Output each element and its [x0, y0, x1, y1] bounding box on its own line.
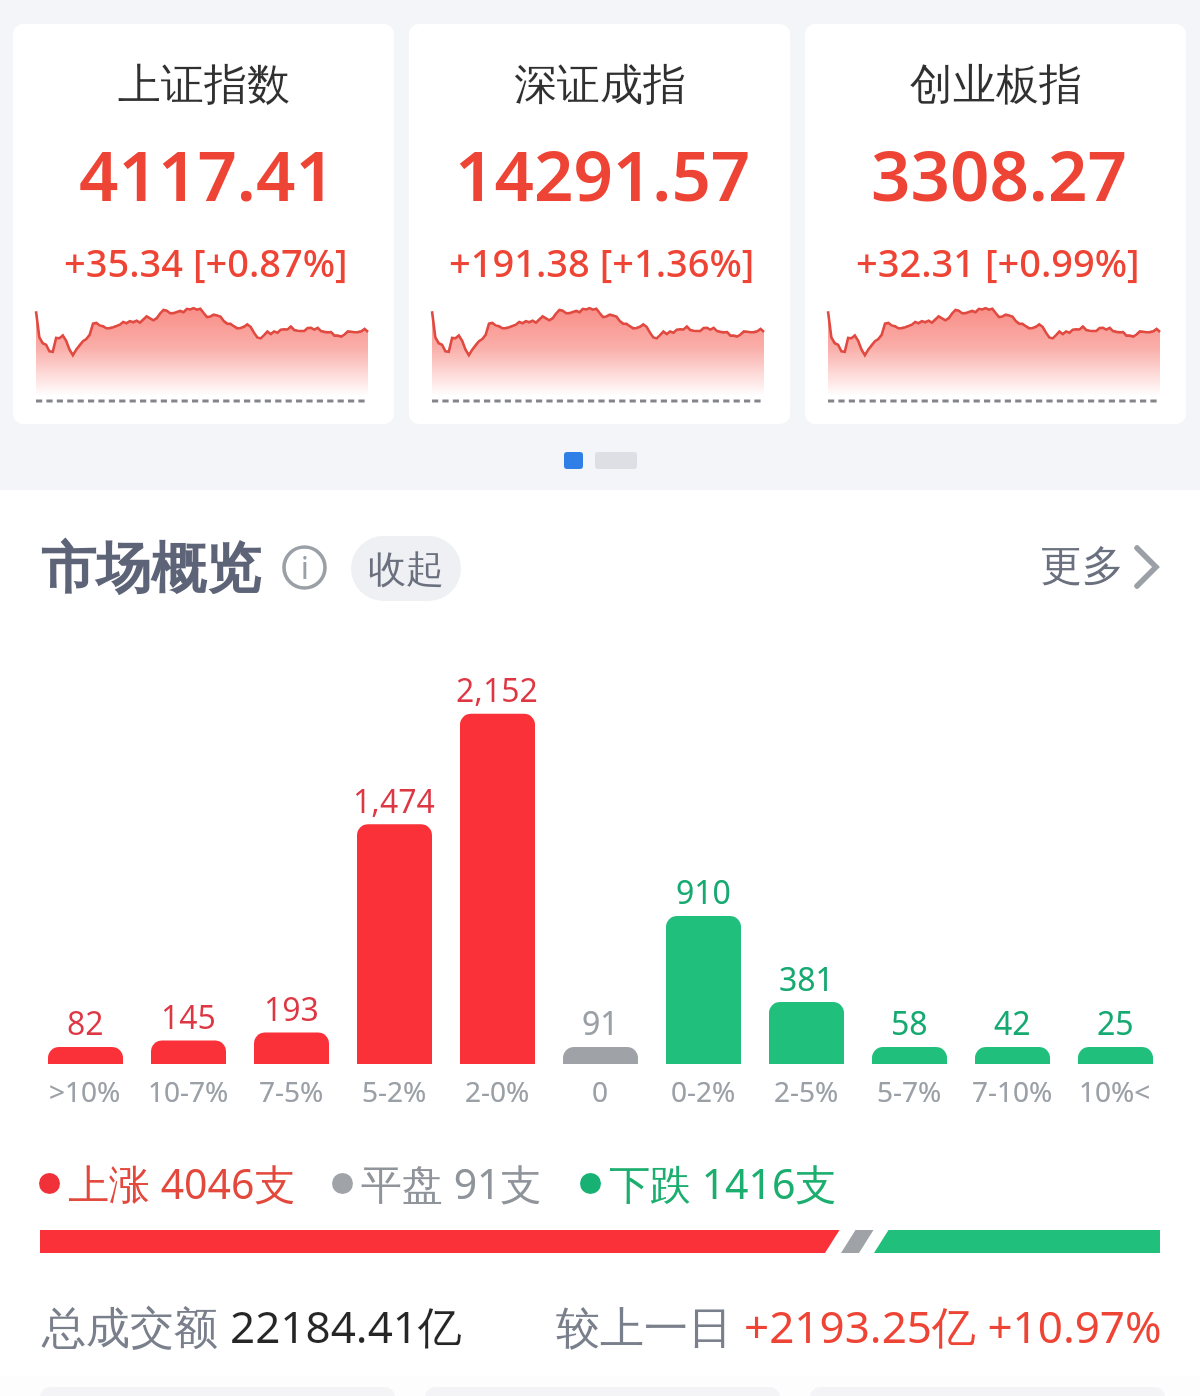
staticText: 平盘 91支	[361, 1155, 542, 1211]
button[interactable]: 深证成指	[409, 24, 790, 424]
staticText: >10%	[49, 1072, 121, 1110]
staticText: 42	[994, 1001, 1031, 1045]
staticText: 82	[67, 1001, 104, 1045]
button[interactable]: 收起	[351, 536, 461, 601]
staticText: 10-7%	[148, 1072, 229, 1110]
button[interactable]: 7-5% 193	[240, 981, 343, 1102]
staticText: 2-5%	[774, 1072, 839, 1110]
staticText: +2193.25亿 +10.97%	[744, 1296, 1162, 1356]
button[interactable]: 更多	[1040, 540, 1158, 593]
staticText: +35.34 [+0.87%]	[64, 236, 348, 288]
staticText: 910	[676, 870, 731, 914]
staticText: 5-7%	[877, 1072, 942, 1110]
staticText: 较上一日	[556, 1296, 744, 1356]
button[interactable]: 0-2% 910	[652, 864, 755, 1102]
staticText: 5-2%	[362, 1072, 427, 1110]
button[interactable]: 2-5% 381	[755, 951, 858, 1102]
button[interactable]: 较上一日	[556, 1296, 1162, 1356]
button[interactable]: 说明	[282, 545, 327, 590]
staticText: 创业板指	[910, 58, 1082, 112]
button[interactable]: 2-0% 2152	[446, 662, 549, 1102]
staticText: 市场概览	[41, 534, 261, 603]
staticText: 10%<	[1079, 1072, 1151, 1110]
staticText: 总成交额	[42, 1296, 230, 1356]
staticText: 58	[891, 1001, 928, 1045]
button[interactable]: 上涨 4046支	[39, 1155, 837, 1211]
staticText: 91	[582, 1001, 619, 1045]
button[interactable]: 创业板指	[805, 24, 1186, 424]
staticText: 更多	[1040, 540, 1124, 593]
button[interactable]: 10%< 25	[1064, 995, 1167, 1102]
staticText: 上证指数	[118, 58, 290, 112]
staticText: 0	[592, 1072, 609, 1110]
button[interactable]: 第一页	[564, 452, 583, 469]
staticText: +32.31 [+0.99%]	[856, 236, 1140, 288]
button[interactable]: >10% 82	[34, 995, 137, 1102]
staticText: 25	[1097, 1001, 1134, 1045]
staticText: 22184.41亿	[230, 1296, 462, 1356]
staticText: 4117.41	[79, 127, 335, 221]
staticText: 145	[161, 995, 216, 1039]
button[interactable]: 5-7% 58	[858, 995, 961, 1102]
staticText: 深证成指	[514, 58, 686, 112]
staticText: 14291.57	[455, 127, 751, 221]
staticText: 193	[264, 987, 319, 1031]
button[interactable]: 10-7% 145	[137, 989, 240, 1102]
button[interactable]: 7-10% 42	[961, 995, 1064, 1102]
staticText: 下跌 1416支	[609, 1155, 837, 1211]
staticText: 2-0%	[465, 1072, 530, 1110]
button[interactable]: 5-2% 1474	[343, 773, 446, 1102]
staticText: 2,152	[456, 668, 538, 712]
staticText: 3308.27	[871, 127, 1127, 221]
staticText: 381	[779, 957, 834, 1001]
staticText: i	[301, 547, 309, 588]
button[interactable]: 总成交额	[42, 1296, 462, 1356]
button[interactable]: 0 91	[549, 995, 652, 1102]
staticText: 1,474	[353, 779, 435, 823]
staticText: 0-2%	[671, 1072, 736, 1110]
staticText: 7-10%	[972, 1072, 1053, 1110]
staticText: 上涨 4046支	[68, 1155, 296, 1211]
button[interactable]: 上证指数	[13, 24, 394, 424]
staticText: 收起	[368, 545, 444, 593]
staticText: +191.38 [+1.36%]	[449, 236, 755, 288]
staticText: 7-5%	[259, 1072, 324, 1110]
